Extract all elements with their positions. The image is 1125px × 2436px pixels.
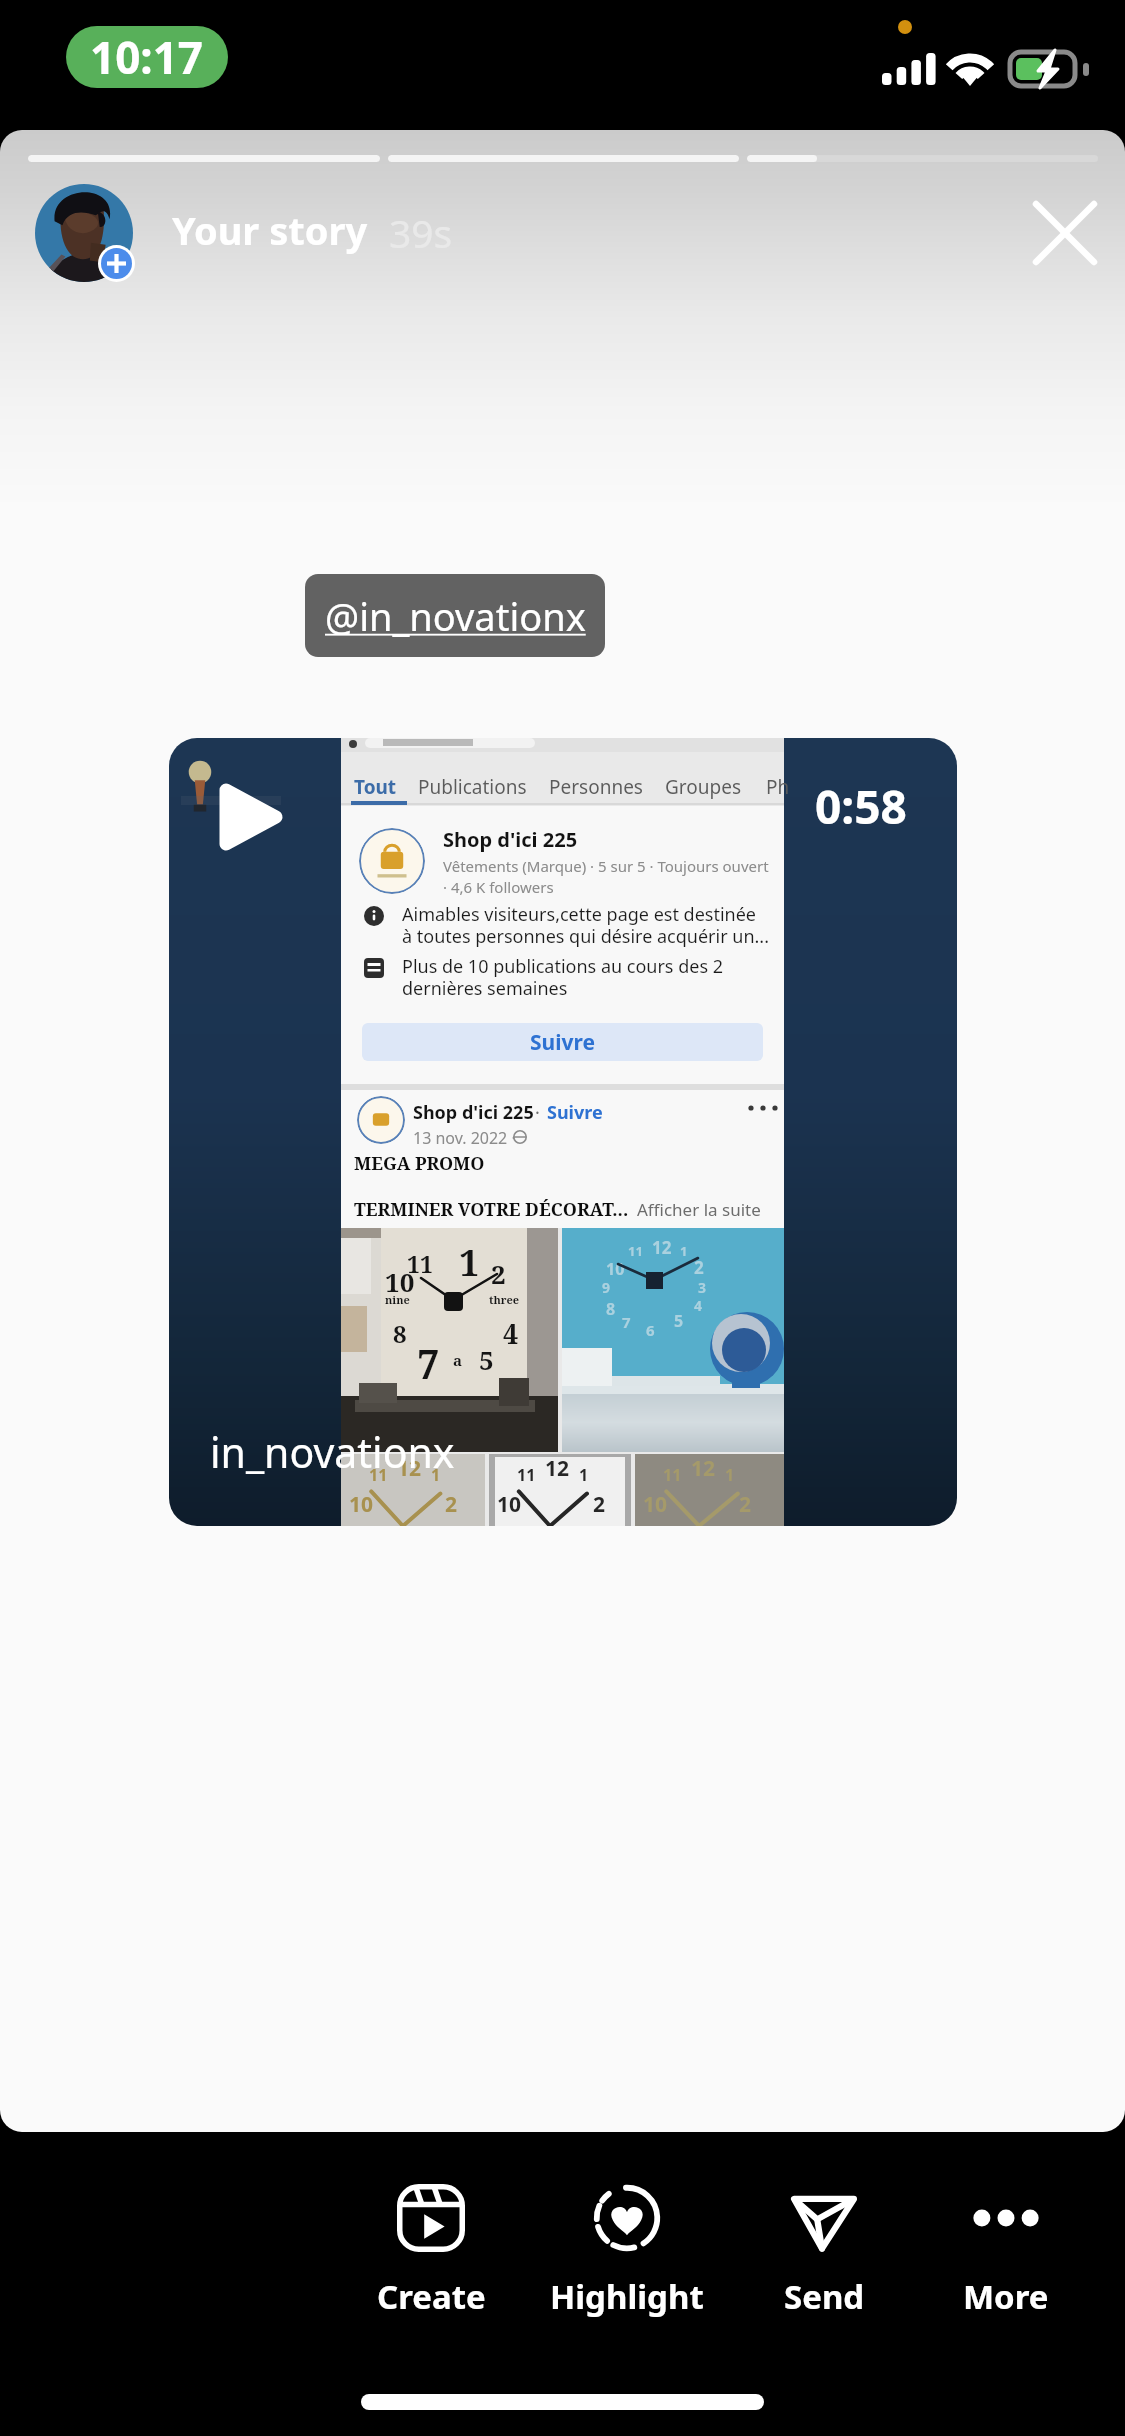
staticText: 10 (606, 1258, 625, 1280)
staticText: 10 (349, 1490, 374, 1519)
staticText: 11 (517, 1464, 536, 1486)
staticText: 7 (417, 1336, 440, 1390)
staticText: 2 (593, 1490, 606, 1519)
staticText: Highlight (550, 2274, 704, 2319)
staticText: dernières semaines (402, 976, 568, 1001)
staticText: Personnes (549, 774, 643, 800)
staticText: 6 (646, 1320, 655, 1340)
staticText: 12 (545, 1454, 570, 1483)
button[interactable]: Tout (169, 738, 957, 1526)
staticText: 1 (431, 1464, 441, 1486)
staticText: 10 (385, 1264, 415, 1299)
staticText: Shop d'ici 225 (443, 826, 578, 853)
staticText: 3 (698, 1278, 707, 1297)
button[interactable]: Highlight (537, 2184, 717, 2319)
staticText: @in_novationx (325, 590, 586, 642)
button[interactable]: Your profile photo (0, 130, 1125, 2132)
staticText: Suivre (530, 1028, 595, 1057)
button[interactable]: Play video (199, 766, 299, 866)
staticText: 11 (628, 1242, 643, 1260)
staticText: 10 (643, 1490, 668, 1519)
button[interactable]: More (916, 2184, 1096, 2319)
staticText: 7 (622, 1312, 631, 1332)
staticText: Suivre (547, 1100, 603, 1125)
staticText: 8 (393, 1317, 407, 1350)
staticText: Vêtements (Marque) · 5 sur 5 · Toujours … (443, 856, 769, 876)
staticText: Plus de 10 publications au cours des 2 (402, 954, 723, 979)
staticText: Groupes (665, 774, 742, 800)
button[interactable]: @in_novationx (305, 574, 605, 657)
staticText: 0:58 (815, 775, 907, 838)
staticText: 4 (503, 1315, 519, 1352)
staticText: 12 (691, 1454, 716, 1483)
staticText: 5 (674, 1310, 684, 1332)
staticText: 10:17 (90, 27, 204, 87)
staticText: à toutes personnes qui désire acquérir u… (402, 924, 770, 949)
staticText: Aimables visiteurs,cette page est destin… (402, 902, 757, 927)
staticText: 2 (694, 1256, 704, 1279)
staticText: 4 (694, 1296, 703, 1315)
staticText: 1 (725, 1464, 735, 1486)
staticText: MEGA PROMO (354, 1151, 485, 1176)
staticText: in_novationx (210, 1424, 455, 1480)
staticText: 5 (479, 1342, 494, 1377)
staticText: a (453, 1350, 463, 1370)
button[interactable]: Suivre (362, 1023, 763, 1061)
button[interactable]: Screen recording 10:17 (66, 26, 228, 88)
staticText: 1 (680, 1242, 688, 1260)
staticText: Send (784, 2274, 865, 2319)
staticText: More (963, 2274, 1049, 2319)
staticText: 13 nov. 2022 · (413, 1127, 516, 1149)
staticText: 9 (602, 1278, 611, 1297)
staticText: · 4,6 K followers (443, 877, 554, 897)
button[interactable]: Create (341, 2184, 521, 2319)
staticText: Ph (766, 774, 790, 800)
staticText: 12 (397, 1454, 422, 1483)
staticText: 2 (739, 1490, 752, 1519)
staticText: 11 (369, 1464, 388, 1486)
staticText: Create (377, 2274, 486, 2319)
staticText: three (489, 1292, 520, 1307)
staticText: Afficher la suite (637, 1198, 761, 1221)
staticText: 8 (606, 1298, 616, 1320)
staticText: 2 (491, 1256, 506, 1291)
staticText: nine (385, 1292, 410, 1307)
staticText: 2 (445, 1490, 458, 1519)
staticText: Publications (418, 774, 527, 800)
staticText: 1 (579, 1464, 589, 1486)
staticText: 12 (652, 1236, 672, 1259)
staticText: Shop d'ici 225 (413, 1100, 534, 1125)
button[interactable]: Add to story (98, 245, 135, 282)
staticText: 39s (389, 206, 453, 259)
button[interactable]: Close (1016, 184, 1114, 282)
staticText: 10 (497, 1490, 522, 1519)
staticText: 1 (459, 1238, 480, 1287)
button[interactable]: Send (734, 2184, 914, 2319)
staticText: Your story (172, 204, 368, 256)
staticText: 11 (407, 1248, 433, 1279)
staticText: · (535, 1100, 540, 1125)
staticText: TERMINER VOTRE DÉCORAT... (354, 1197, 629, 1222)
staticText: Tout (354, 774, 397, 800)
button[interactable]: Your profile photo (35, 184, 133, 282)
staticText: 11 (663, 1464, 682, 1486)
